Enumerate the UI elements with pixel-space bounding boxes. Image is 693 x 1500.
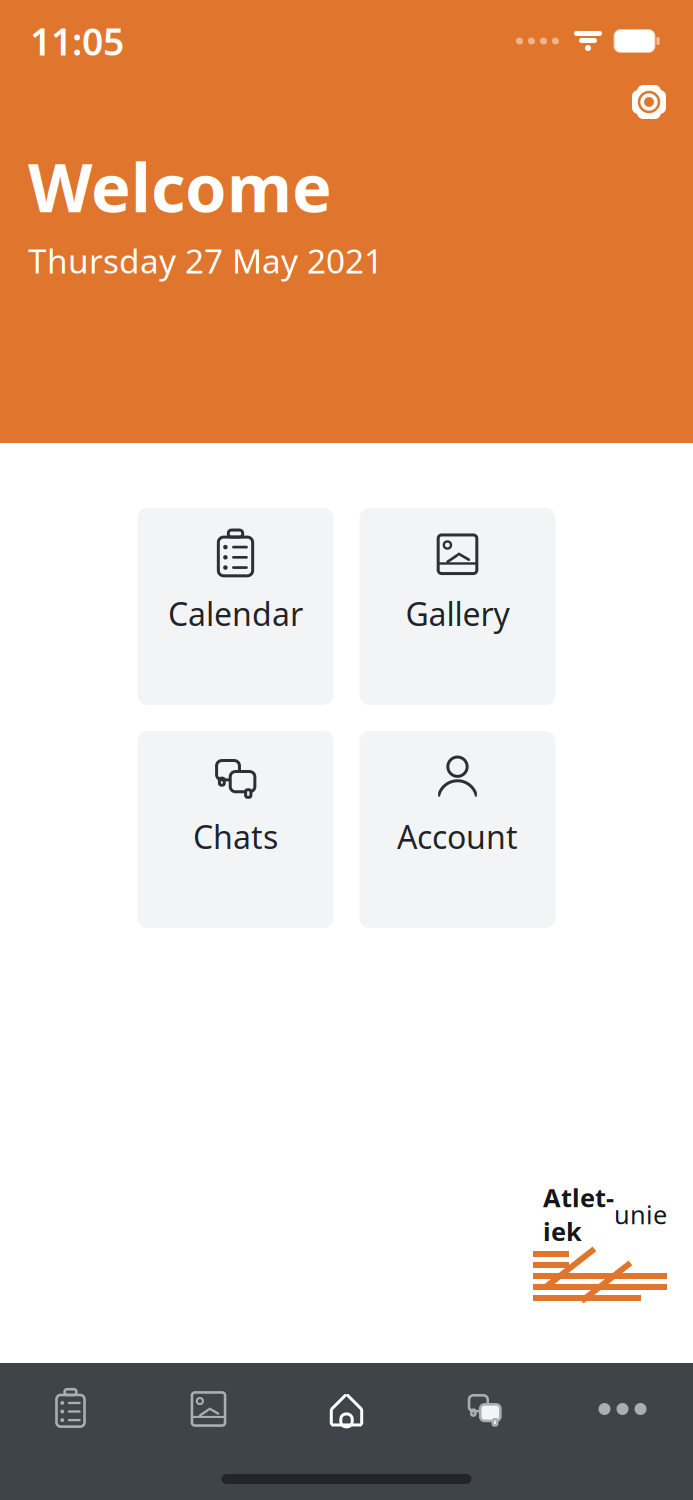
button[interactable]: Chats <box>137 731 333 928</box>
staticText: Welcome <box>28 142 332 230</box>
button[interactable]: Account <box>359 731 555 928</box>
button[interactable]: Settings <box>623 76 675 128</box>
button[interactable]: Home <box>277 1381 415 1437</box>
button[interactable]: Gallery <box>359 508 555 705</box>
staticText: Chats <box>193 815 278 858</box>
staticText: Atletiek <box>543 1181 614 1248</box>
button[interactable]: Gallery <box>139 1381 277 1437</box>
button[interactable]: Calendar <box>137 508 333 705</box>
button[interactable]: Calendar <box>1 1381 139 1437</box>
button[interactable]: Chats <box>415 1381 553 1437</box>
staticText: 11:05 <box>30 16 124 66</box>
staticText: unie <box>614 1197 667 1231</box>
staticText: Account <box>397 815 518 858</box>
staticText: Gallery <box>405 592 509 635</box>
staticText: Thursday 27 May 2021 <box>28 238 383 283</box>
button[interactable]: More <box>553 1381 691 1437</box>
staticText: Calendar <box>168 592 303 635</box>
